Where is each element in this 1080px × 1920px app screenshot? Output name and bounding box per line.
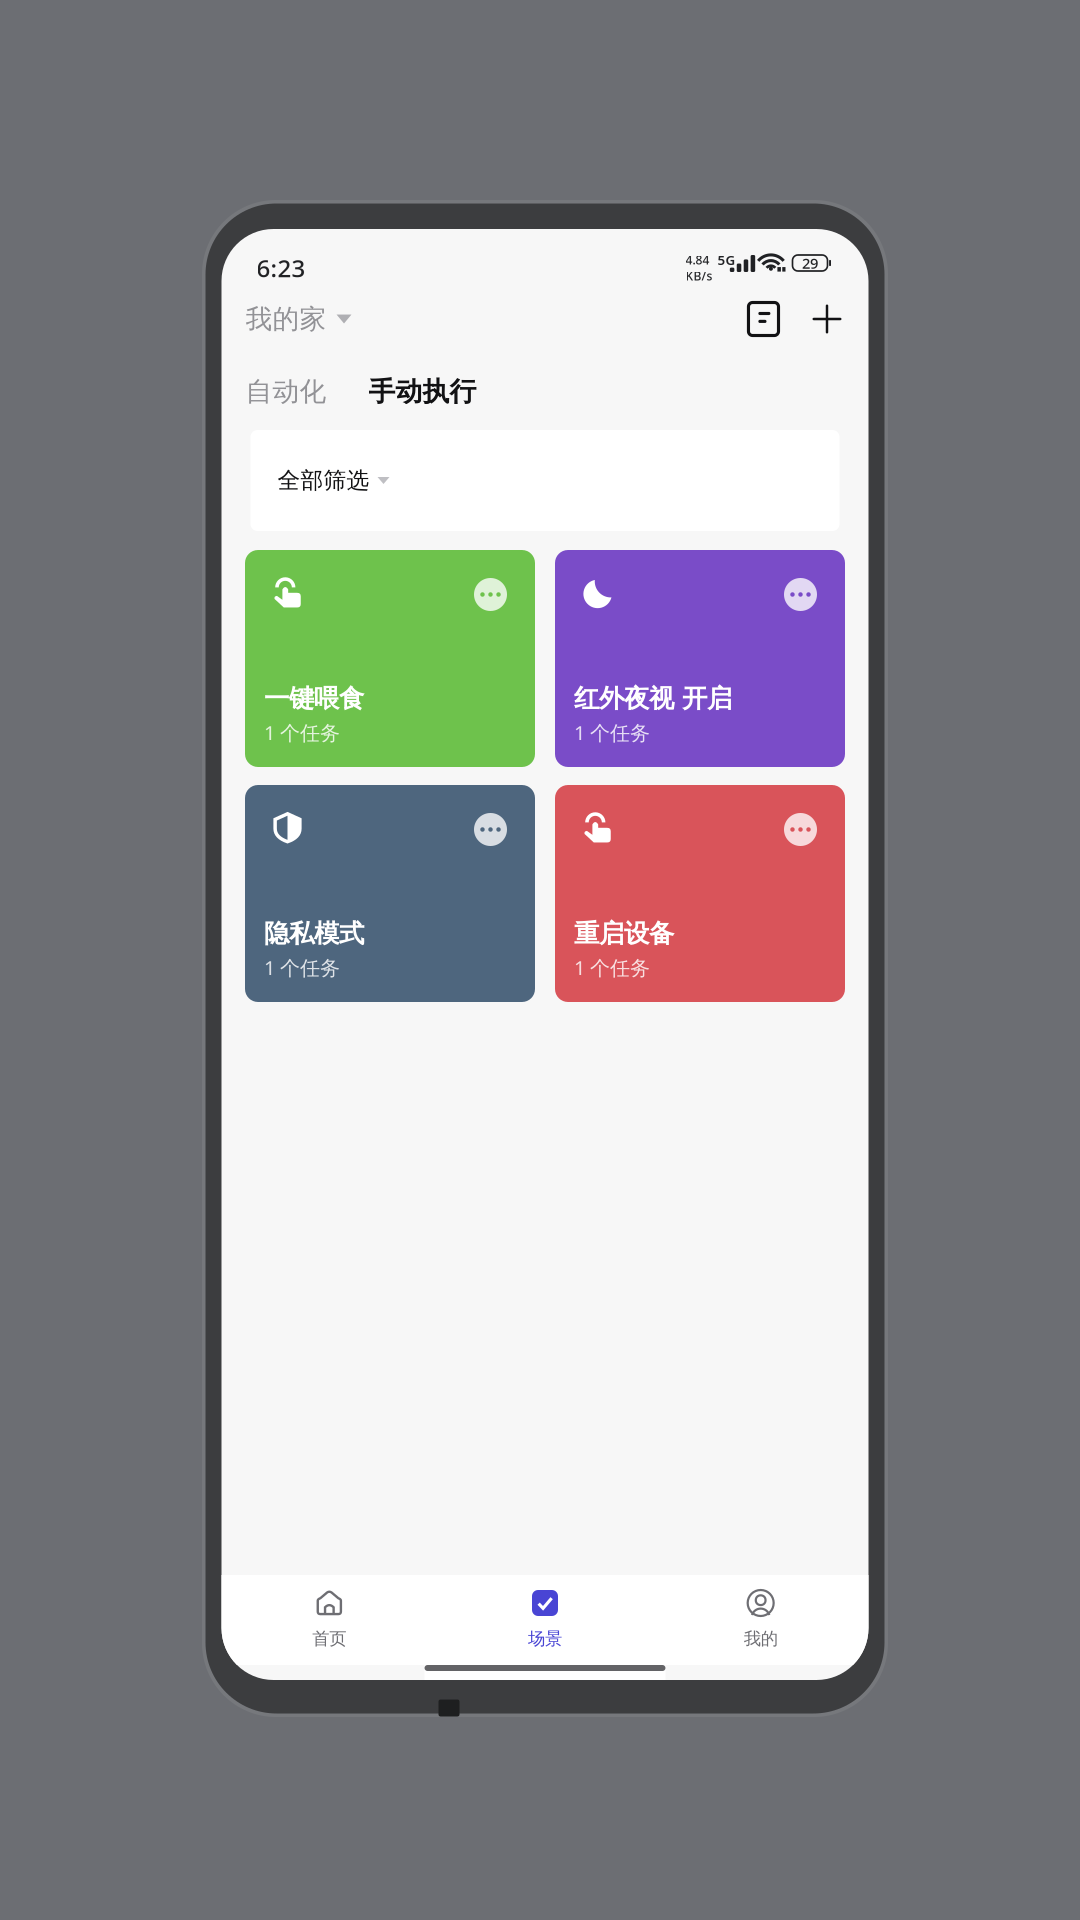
staticText: 6:23	[256, 252, 305, 284]
button[interactable]: 手动执行	[368, 369, 476, 414]
staticText: 5G	[717, 251, 735, 269]
button[interactable]: 首页	[221, 1575, 437, 1665]
button[interactable]: Logs	[741, 295, 785, 342]
staticText: 一键喂食	[264, 683, 364, 714]
staticText: 红外夜视 开启	[574, 683, 732, 714]
button[interactable]: 场景	[437, 1575, 653, 1665]
staticText: 1 个任务	[574, 954, 650, 981]
staticText: 全部筛选	[277, 467, 369, 494]
staticText: 1 个任务	[264, 719, 340, 746]
staticText: 场景	[528, 1628, 562, 1649]
staticText: 4.84	[685, 252, 709, 268]
button[interactable]: Add	[805, 297, 848, 340]
button[interactable]: 我的	[653, 1575, 868, 1665]
button[interactable]: 自动化	[245, 369, 326, 414]
button[interactable]: 全部筛选	[250, 430, 839, 531]
button[interactable]: 红外夜视 开启	[555, 550, 845, 767]
staticText: 我的	[744, 1628, 778, 1649]
button[interactable]: 隐私模式	[245, 785, 535, 1002]
button[interactable]: 我的家	[245, 293, 351, 345]
button[interactable]: 一键喂食	[245, 550, 535, 767]
staticText: 1 个任务	[574, 719, 650, 746]
staticText: 29	[802, 253, 818, 273]
staticText: 自动化	[245, 375, 326, 408]
staticText: 1 个任务	[264, 954, 340, 981]
staticText: 手动执行	[368, 375, 476, 408]
staticText: 我的家	[245, 303, 326, 335]
button[interactable]: 重启设备	[555, 785, 845, 1002]
staticText: 重启设备	[574, 918, 674, 949]
staticText: 隐私模式	[264, 918, 364, 949]
staticText: 首页	[312, 1628, 346, 1649]
staticText: KB/s	[685, 268, 712, 284]
